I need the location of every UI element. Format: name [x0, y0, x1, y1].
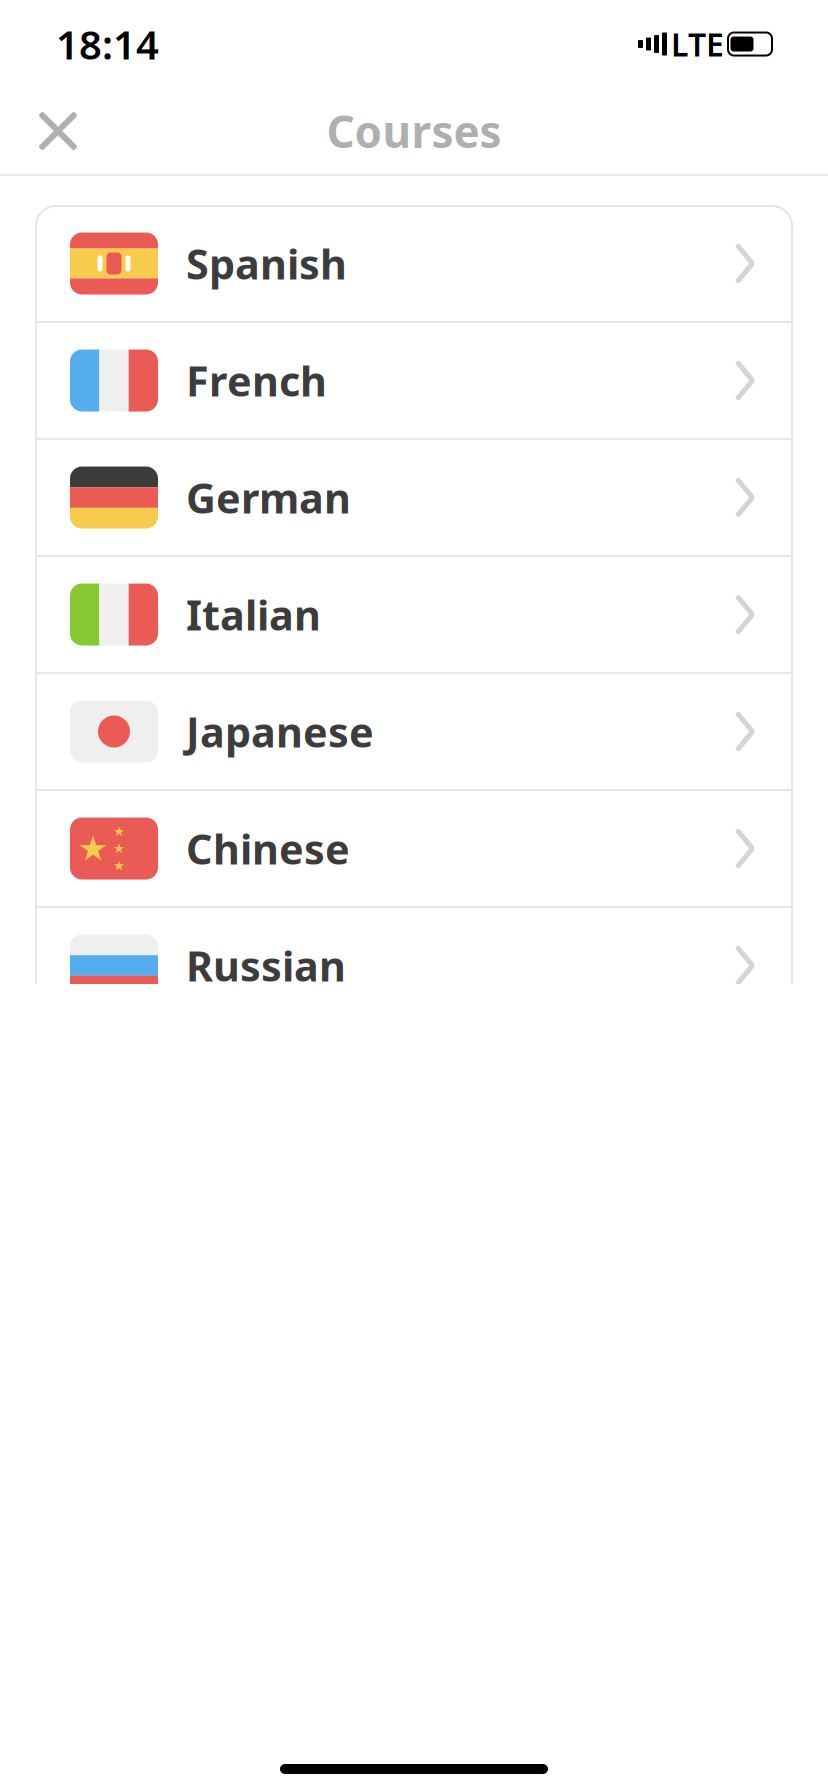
- staticText: Italian: [186, 587, 321, 642]
- button[interactable]: Spanish: [36, 206, 792, 323]
- staticText: Spanish: [186, 236, 347, 291]
- staticText: Russian: [186, 938, 346, 993]
- staticText: ★: [113, 824, 125, 839]
- staticText: Courses: [326, 102, 501, 160]
- button[interactable]: ★: [36, 791, 792, 908]
- button[interactable]: Italian: [36, 557, 792, 674]
- button[interactable]: Japanese: [36, 674, 792, 791]
- staticText: ★: [77, 829, 108, 868]
- staticText: 18:14: [56, 17, 159, 70]
- staticText: Japanese: [186, 704, 374, 759]
- button[interactable]: German: [36, 440, 792, 557]
- button[interactable]: Russian: [36, 908, 792, 1025]
- button[interactable]: French: [36, 323, 792, 440]
- button[interactable]: Close: [26, 99, 90, 163]
- staticText: ★: [113, 858, 125, 873]
- staticText: Chinese: [186, 821, 350, 876]
- staticText: LTE: [671, 23, 724, 65]
- staticText: French: [186, 353, 327, 408]
- staticText: German: [186, 470, 351, 525]
- staticText: ★: [113, 841, 125, 856]
